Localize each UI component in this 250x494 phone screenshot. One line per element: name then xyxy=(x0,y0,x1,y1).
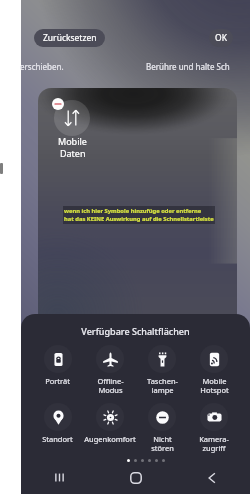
button[interactable]: Augenkomfort xyxy=(84,403,136,444)
staticText: Daten xyxy=(60,147,86,159)
button[interactable]: Home xyxy=(98,461,174,494)
staticText: Augenkomfort xyxy=(84,434,136,444)
staticText: Porträt xyxy=(45,376,70,386)
staticText: OK xyxy=(215,32,227,44)
staticText: Standort xyxy=(42,434,73,444)
button[interactable]: Kamera- zugriff xyxy=(188,403,240,454)
button[interactable]: Back xyxy=(174,461,250,494)
button[interactable]: OK xyxy=(209,29,233,47)
button[interactable]: Recent apps xyxy=(21,461,98,494)
button[interactable]: Offline- Modus xyxy=(84,345,136,396)
staticText: Taschen- lampe xyxy=(147,376,178,396)
button[interactable]: Mobile Hotspot xyxy=(188,345,240,396)
staticText: hat das KEINE Auswirkung auf die Schnell… xyxy=(64,215,214,223)
staticText: Mobile Hotspot xyxy=(200,376,229,396)
staticText: Offline- Modus xyxy=(97,376,124,396)
staticText: erschieben. xyxy=(20,61,64,72)
button[interactable]: Taschen- lampe xyxy=(136,345,188,396)
staticText: Zurücksetzen xyxy=(43,32,97,44)
button[interactable]: Nicht stören xyxy=(136,403,188,454)
staticText: Berühre und halte Sch xyxy=(146,61,230,72)
button[interactable]: Mobile Daten xyxy=(43,97,102,162)
button[interactable]: Zurücksetzen xyxy=(34,29,105,47)
button[interactable]: Porträt xyxy=(31,345,84,386)
staticText: Nicht stören xyxy=(151,434,174,454)
staticText: wenn ich hier Symbole hinzufüge oder ent… xyxy=(64,207,202,215)
staticText: Verfügbare Schaltflächen xyxy=(21,325,250,337)
button[interactable]: Standort xyxy=(31,403,84,444)
staticText: Kamera- zugriff xyxy=(199,434,229,454)
staticText: Mobile xyxy=(58,135,87,147)
